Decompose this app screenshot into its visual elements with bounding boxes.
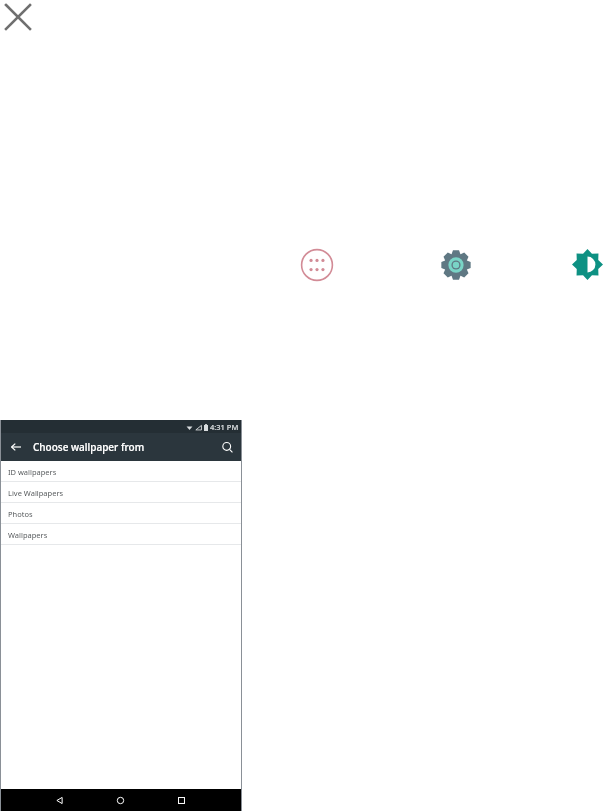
button[interactable]: Back bbox=[54, 795, 65, 806]
button[interactable]: Photos bbox=[0, 503, 242, 524]
button[interactable]: Search bbox=[221, 441, 234, 454]
staticText: Wallpapers bbox=[8, 530, 48, 540]
staticText: Live Wallpapers bbox=[8, 488, 64, 498]
staticText: Photos bbox=[8, 509, 33, 519]
staticText: 4:31 PM bbox=[210, 422, 239, 432]
button[interactable]: Live Wallpapers bbox=[0, 482, 242, 503]
button[interactable]: Close bbox=[3, 2, 33, 32]
button[interactable]: Home bbox=[115, 795, 126, 806]
button[interactable]: All apps bbox=[300, 248, 334, 282]
button[interactable]: Brightness bbox=[572, 249, 603, 280]
button[interactable]: ID wallpapers bbox=[0, 461, 242, 482]
button[interactable]: Back bbox=[9, 440, 23, 454]
button[interactable]: Recent apps bbox=[176, 795, 187, 806]
button[interactable]: Wallpapers bbox=[0, 524, 242, 545]
staticText: Choose wallpaper from bbox=[33, 440, 145, 454]
button[interactable]: Settings bbox=[439, 248, 473, 282]
staticText: ID wallpapers bbox=[8, 467, 57, 477]
